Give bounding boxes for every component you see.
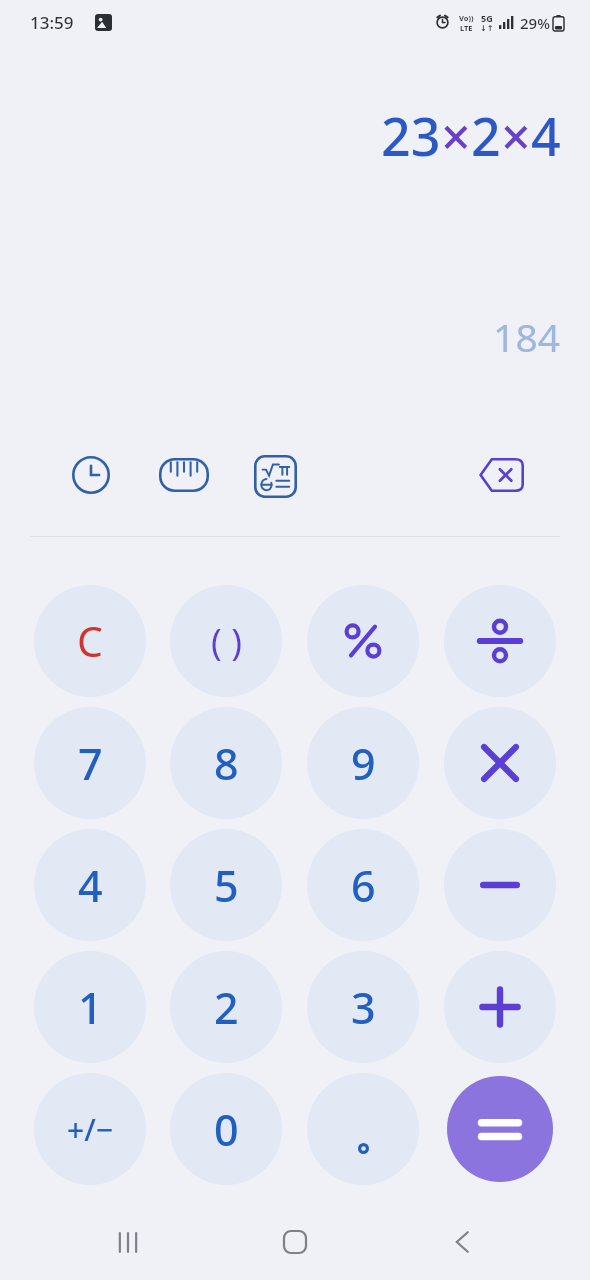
button[interactable]: 0	[170, 1073, 282, 1185]
staticText: 6	[351, 856, 376, 915]
button[interactable]: Equals	[447, 1076, 553, 1182]
staticText: 4	[531, 100, 561, 171]
staticText: 1	[78, 978, 103, 1037]
button[interactable]: 7	[34, 707, 146, 819]
staticText: C	[77, 613, 103, 669]
button[interactable]: 4	[34, 829, 146, 941]
button[interactable]: Multiply	[444, 707, 556, 819]
button[interactable]: Backspace	[478, 458, 524, 492]
button[interactable]: Unit converter	[159, 458, 209, 492]
staticText: 13:59	[30, 11, 74, 34]
button[interactable]: Formulas	[254, 455, 297, 498]
button[interactable]: Parentheses	[170, 585, 282, 697]
button[interactable]: 5	[170, 829, 282, 941]
button[interactable]: Plus	[444, 951, 556, 1063]
staticText: ×	[501, 100, 531, 171]
staticText: Vo))	[459, 13, 474, 23]
staticText: 7	[78, 734, 103, 793]
button[interactable]: Back	[434, 1214, 490, 1270]
button[interactable]: Clear	[34, 585, 146, 697]
staticText: ×	[441, 100, 471, 171]
staticText: +/−	[67, 1109, 113, 1150]
button[interactable]: Divide	[444, 585, 556, 697]
staticText: ( )	[211, 617, 242, 666]
staticText: 8	[214, 734, 239, 793]
staticText: LTE	[460, 23, 473, 33]
staticText: 9	[351, 734, 376, 793]
staticText: 2	[471, 100, 501, 171]
staticText: 0	[214, 1100, 239, 1159]
button[interactable]: 3	[307, 951, 419, 1063]
staticText: 4	[78, 856, 103, 915]
staticText: 29%	[520, 13, 550, 33]
staticText: ↓↑	[480, 24, 494, 33]
button[interactable]: Percent	[307, 585, 419, 697]
staticText: 3	[351, 978, 376, 1037]
button[interactable]: Plus minus	[34, 1073, 146, 1185]
button[interactable]: Recent apps	[100, 1214, 156, 1270]
staticText: 2	[214, 978, 239, 1037]
button[interactable]: 9	[307, 707, 419, 819]
staticText: 5	[214, 856, 239, 915]
staticText: 23	[381, 100, 441, 171]
button[interactable]: 1	[34, 951, 146, 1063]
button[interactable]: 2	[170, 951, 282, 1063]
button[interactable]: 8	[170, 707, 282, 819]
staticText: 5G	[481, 12, 493, 24]
button[interactable]: 6	[307, 829, 419, 941]
button[interactable]: History	[68, 452, 114, 498]
button[interactable]: Decimal point	[307, 1073, 419, 1185]
button[interactable]: Home	[267, 1214, 323, 1270]
staticText: 184	[493, 310, 560, 363]
button[interactable]: Minus	[444, 829, 556, 941]
